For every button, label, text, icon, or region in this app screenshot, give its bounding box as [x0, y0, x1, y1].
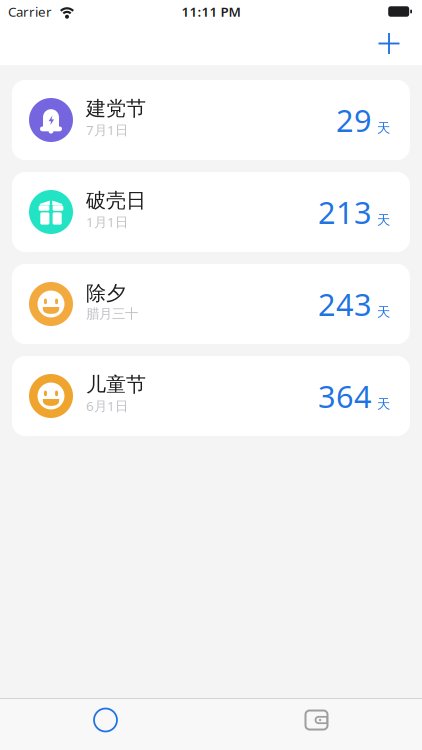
staticText: Carrier	[8, 3, 52, 20]
button[interactable]: Countdowns	[0, 699, 211, 750]
staticText: 6月1日	[86, 397, 128, 415]
staticText: 29	[336, 100, 372, 140]
staticText: 天	[377, 304, 390, 320]
button[interactable]: Add	[370, 28, 422, 62]
button[interactable]: 建党节	[12, 80, 410, 160]
staticText: 儿童节	[86, 372, 146, 397]
staticText: 243	[318, 284, 372, 324]
staticText: 11:11 PM	[181, 3, 240, 20]
staticText: 天	[377, 212, 390, 228]
staticText: 364	[318, 376, 372, 416]
button[interactable]: 除夕	[12, 264, 410, 344]
staticText: 213	[318, 192, 372, 232]
staticText: 腊月三十	[86, 306, 138, 322]
button[interactable]: Wallet	[211, 699, 422, 750]
staticText: 天	[377, 120, 390, 136]
staticText: 建党节	[86, 96, 146, 121]
staticText: 除夕	[86, 281, 126, 306]
staticText: 破壳日	[86, 188, 146, 213]
button[interactable]: 破壳日	[12, 172, 410, 252]
staticText: 天	[377, 396, 390, 412]
staticText: 7月1日	[86, 121, 128, 139]
staticText: 1月1日	[86, 213, 128, 231]
button[interactable]: 儿童节	[12, 356, 410, 436]
